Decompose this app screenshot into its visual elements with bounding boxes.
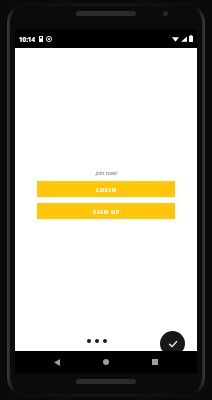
- button[interactable]: Confirm: [160, 331, 185, 356]
- button[interactable]: Recent apps: [147, 354, 163, 370]
- staticText: 10:14: [19, 35, 35, 43]
- staticText: join now!: [95, 169, 118, 176]
- button[interactable]: SIGN UP: [37, 203, 175, 219]
- staticText: LOGIN: [96, 186, 117, 193]
- button[interactable]: Back: [49, 354, 65, 370]
- button[interactable]: Home: [98, 354, 114, 370]
- staticText: SIGN UP: [93, 208, 120, 215]
- button[interactable]: LOGIN: [37, 181, 175, 197]
